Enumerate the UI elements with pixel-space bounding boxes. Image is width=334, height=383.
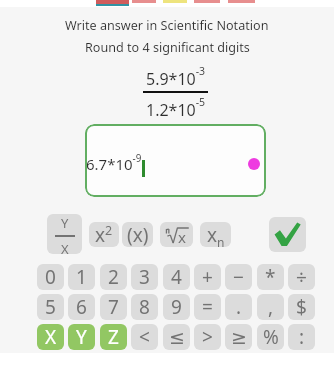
button[interactable]: 6 — [68, 294, 95, 320]
staticText: 4 — [171, 264, 182, 290]
button[interactable]: Submit answer — [269, 217, 306, 252]
button[interactable]: 7 — [100, 294, 127, 320]
staticText: 1.2*10-5 — [146, 95, 206, 120]
button[interactable]: : — [288, 324, 315, 350]
button[interactable]: $ — [288, 294, 315, 320]
staticText: xn — [207, 222, 225, 247]
staticText: 7 — [108, 294, 119, 320]
staticText: 1 — [76, 264, 87, 290]
staticText: + — [202, 264, 213, 290]
staticText: 9 — [171, 294, 182, 320]
staticText: 3 — [139, 264, 150, 290]
button[interactable]: > — [194, 324, 221, 350]
staticText: = — [202, 294, 213, 320]
staticText: X — [45, 324, 57, 350]
button[interactable]: ≥ — [225, 324, 252, 350]
button[interactable]: * — [257, 264, 284, 290]
button[interactable]: = — [194, 294, 221, 320]
staticText: $ — [296, 294, 307, 320]
staticText: Round to 4 significant digits — [85, 39, 250, 56]
staticText: 6.7*10-9 — [86, 151, 142, 175]
staticText: 5.9*10-3 — [146, 64, 206, 89]
staticText: , — [268, 294, 274, 320]
staticText: . — [236, 294, 242, 320]
staticText: Y — [61, 214, 69, 232]
staticText: Write answer in Scientific Notation — [65, 17, 269, 34]
button[interactable]: subscript — [200, 222, 231, 247]
button[interactable]: 6.7*10-9 — [85, 124, 266, 197]
button[interactable]: 9 — [163, 294, 190, 320]
staticText: : — [299, 324, 305, 350]
button[interactable]: parentheses — [122, 222, 153, 247]
button[interactable]: 8 — [131, 294, 158, 320]
button[interactable]: ÷ — [288, 264, 315, 290]
staticText: 2 — [108, 264, 119, 290]
button[interactable]: < — [131, 324, 158, 350]
button[interactable]: . — [225, 294, 252, 320]
button[interactable]: 5 — [37, 294, 64, 320]
button[interactable]: , — [257, 294, 284, 320]
staticText: x — [178, 227, 186, 245]
staticText: % — [263, 324, 279, 350]
staticText: − — [233, 264, 244, 290]
staticText: Z — [108, 324, 119, 350]
button[interactable]: Y — [68, 324, 95, 350]
staticText: ≥ — [231, 326, 247, 348]
staticText: 0 — [45, 264, 56, 290]
staticText: X — [61, 240, 69, 254]
button[interactable]: X — [37, 324, 64, 350]
button[interactable]: Z — [100, 324, 127, 350]
button[interactable]: nth root — [160, 222, 193, 247]
button[interactable]: + — [194, 264, 221, 290]
staticText: (x) — [127, 222, 149, 247]
staticText: 5 — [45, 294, 56, 320]
button[interactable]: Fraction — [47, 214, 82, 254]
button[interactable]: 1 — [68, 264, 95, 290]
staticText: x2 — [95, 222, 113, 247]
button[interactable]: ≤ — [163, 324, 190, 350]
button[interactable]: − — [225, 264, 252, 290]
button[interactable]: x squared — [89, 222, 119, 247]
staticText: ≤ — [169, 326, 185, 348]
button[interactable]: 0 — [37, 264, 64, 290]
staticText: ÷ — [296, 264, 307, 290]
button[interactable]: 2 — [100, 264, 127, 290]
staticText: 6 — [76, 294, 87, 320]
button[interactable]: 4 — [163, 264, 190, 290]
button[interactable]: % — [257, 324, 284, 350]
staticText: > — [202, 324, 213, 350]
button[interactable]: 3 — [131, 264, 158, 290]
staticText: Y — [76, 324, 87, 350]
staticText: 8 — [139, 294, 150, 320]
staticText: * — [265, 264, 276, 290]
staticText: < — [139, 324, 150, 350]
